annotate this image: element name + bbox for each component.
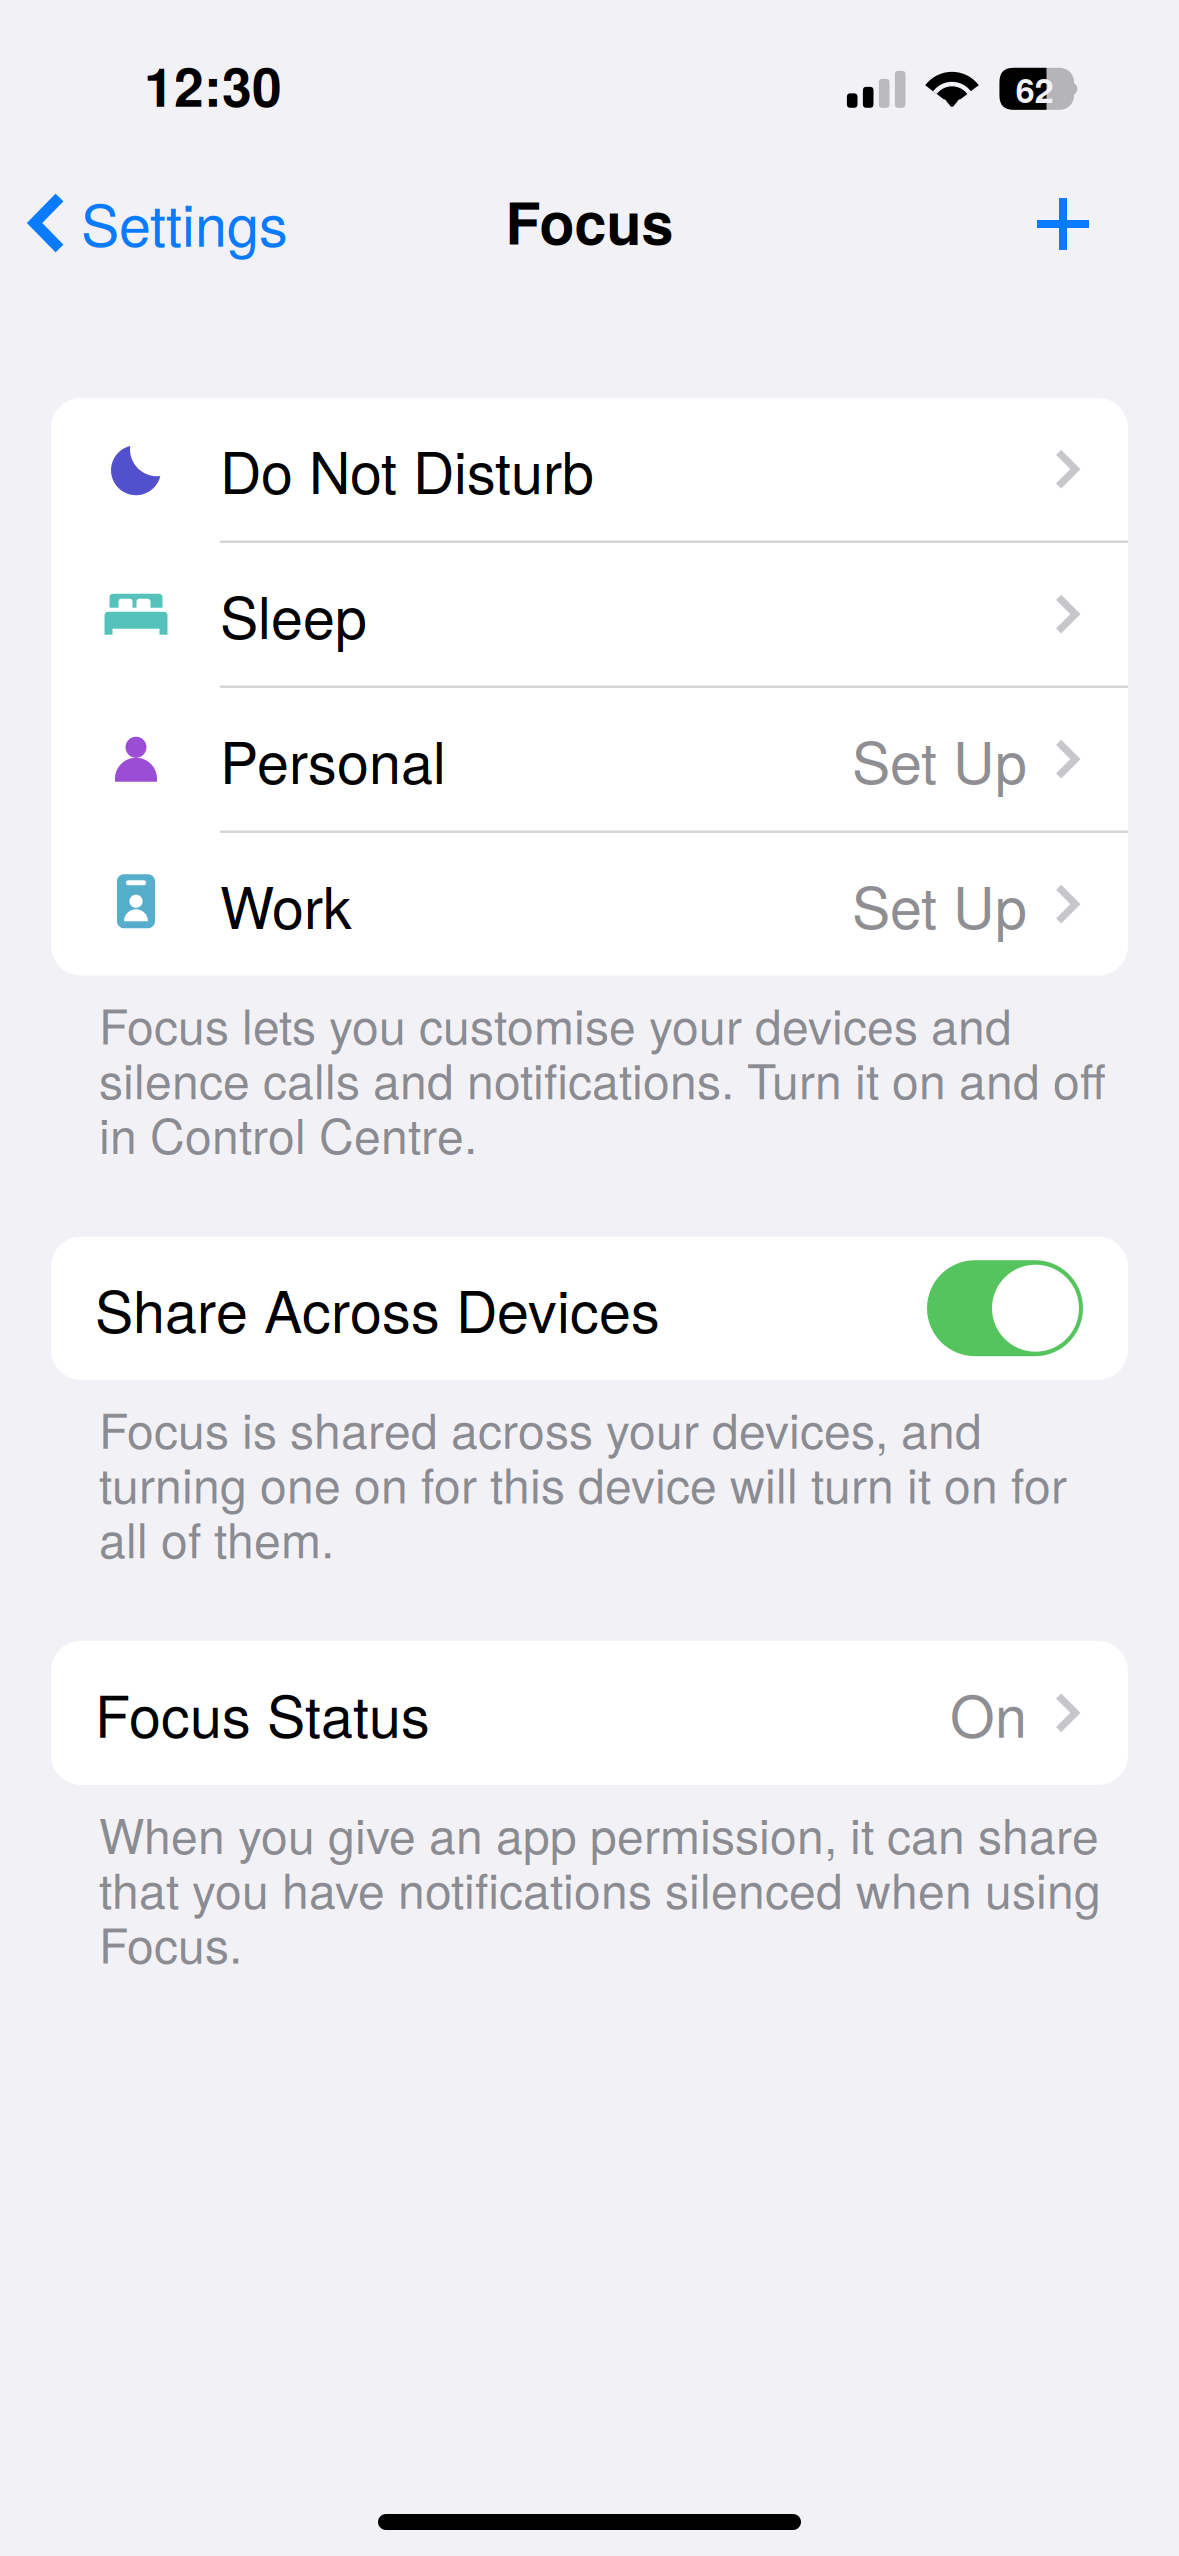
staticText: On — [950, 1672, 1027, 1754]
staticText: Focus — [505, 180, 673, 262]
button[interactable]: Share Across Devices — [51, 1237, 1128, 1380]
button[interactable]: Work — [51, 833, 1128, 975]
staticText: 62 — [1015, 64, 1053, 114]
staticText: Settings — [81, 181, 288, 263]
button[interactable]: Personal — [51, 688, 1128, 830]
staticText: Share Across Devices — [95, 1267, 660, 1349]
staticText: Set Up — [852, 718, 1027, 800]
staticText: Work — [220, 863, 352, 945]
staticText: Do Not Disturb — [220, 428, 594, 510]
button[interactable]: Do Not Disturb — [51, 398, 1128, 540]
button[interactable]: Add Focus — [993, 113, 1179, 276]
staticText: When you give an app permission, it can … — [99, 1799, 1101, 1977]
staticText: Personal — [220, 718, 446, 800]
staticText: Focus Status — [95, 1672, 430, 1754]
button[interactable]: Sleep — [51, 543, 1128, 685]
staticText: Focus is shared across your devices, and… — [99, 1394, 1067, 1572]
button[interactable]: Settings — [0, 113, 312, 276]
staticText: 12:30 — [144, 47, 282, 123]
staticText: Sleep — [220, 573, 367, 655]
staticText: Focus lets you customise your devices an… — [99, 989, 1106, 1168]
button[interactable]: Focus Status — [51, 1641, 1128, 1785]
staticText: Set Up — [852, 863, 1027, 945]
